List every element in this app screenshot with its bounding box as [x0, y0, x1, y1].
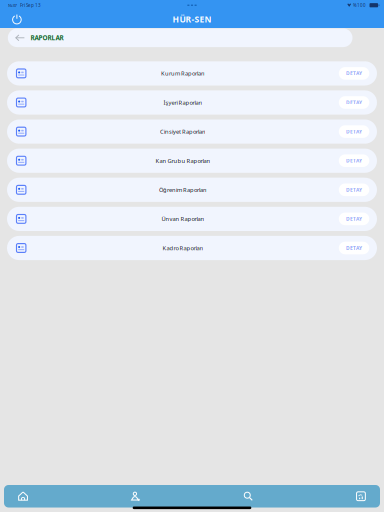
button[interactable]: Çıkış: [5, 11, 28, 28]
button[interactable]: Cinsiyet Raporları: [7, 119, 377, 144]
button[interactable]: Ünvan Raporları: [7, 207, 377, 231]
button[interactable]: Kurum Raporları: [7, 61, 377, 85]
button[interactable]: Ara: [243, 485, 253, 507]
button[interactable]: Kan Grubu Raporları: [7, 149, 377, 173]
staticText: DETAY: [346, 128, 362, 135]
button[interactable]: Profil: [131, 485, 141, 507]
staticText: Ünvan Raporları: [162, 215, 204, 223]
button[interactable]: Raporlar: [356, 485, 366, 507]
staticText: Kan Grubu Raporları: [156, 157, 210, 165]
staticText: DETAY: [346, 157, 362, 164]
button[interactable]: Kadro Raporları: [7, 236, 377, 260]
button[interactable]: RAPORLAR: [8, 28, 352, 47]
staticText: Fri Sep 13: [20, 2, 41, 8]
staticText: DETAY: [346, 70, 362, 77]
staticText: %100: [353, 2, 366, 8]
button[interactable]: Öğrenim Raporları: [7, 178, 377, 202]
staticText: 16:37: [8, 2, 17, 8]
staticText: İşyeri Raporları: [164, 99, 202, 106]
button[interactable]: İşyeri Raporları: [7, 90, 377, 115]
staticText: Cinsiyet Raporları: [160, 128, 205, 135]
staticText: DETAY: [346, 215, 362, 222]
staticText: Öğrenim Raporları: [159, 186, 206, 194]
button[interactable]: Ana Sayfa: [18, 485, 28, 507]
staticText: DETAY: [346, 245, 362, 251]
staticText: Kurum Raporları: [161, 69, 204, 77]
staticText: DETAY: [346, 186, 362, 193]
staticText: RAPORLAR: [30, 33, 63, 42]
staticText: Kadro Raporları: [163, 244, 203, 252]
staticText: DETAY: [346, 99, 362, 106]
staticText: HÜR-SEN: [172, 13, 211, 25]
